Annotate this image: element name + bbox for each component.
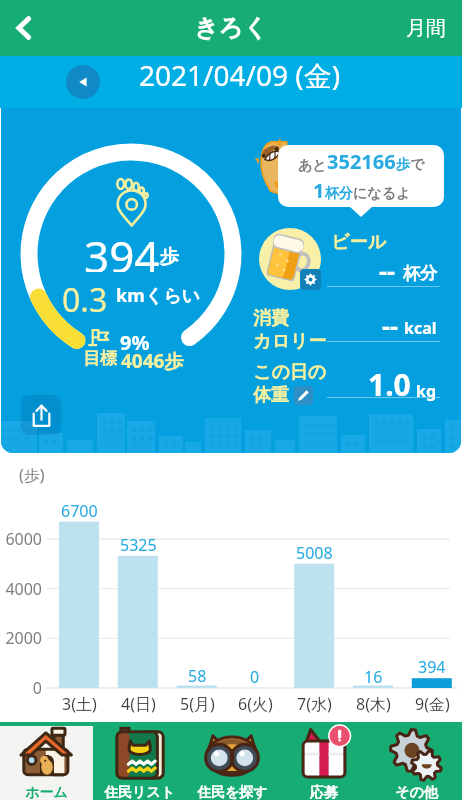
staticText: ホーム [25,784,68,800]
staticText: きろく [194,13,268,43]
staticText: になるよ [353,185,411,203]
staticText: ビール [331,231,386,254]
staticText: 0.3 [62,278,108,312]
staticText: 2000 [5,627,42,649]
staticText: 歩 [160,245,179,269]
staticText: 歩 [396,156,410,174]
staticText: 3(土) [62,693,97,715]
staticText: 月間 [406,16,446,41]
staticText: 4(日) [121,693,156,715]
staticText: 9(金) [415,693,450,715]
staticText: 消費 [253,307,289,330]
staticText: 応募 [310,784,338,800]
staticText: (歩) [19,464,45,486]
staticText: 体重 [253,384,289,407]
button[interactable]: 住民を探す [186,722,278,800]
staticText: 4000 [5,578,42,600]
staticText: 352166 [327,148,396,175]
staticText: 2021/04/09 (金) [139,56,341,94]
staticText: 0 [32,677,42,699]
staticText: カロリー [253,330,327,353]
staticText: 目標 [83,348,117,369]
button[interactable]: Back [0,0,48,56]
staticText: 1 [313,177,325,204]
button[interactable]: Edit weight [294,386,313,405]
staticText: 16 [364,666,383,688]
staticText: kg [416,380,437,402]
button[interactable]: 住民リスト [93,722,186,800]
button[interactable]: Previous day [66,65,100,99]
staticText: kmくらい [116,283,200,308]
staticText: 4046歩 [121,348,184,374]
staticText: 7(水) [297,693,332,715]
staticText: 1.0 [368,364,411,405]
button[interactable]: ホーム [0,722,93,800]
staticText: 住民リスト [104,784,175,800]
staticText: 6000 [5,528,42,550]
button[interactable]: 応募 [278,722,370,800]
staticText: 5325 [120,534,157,556]
staticText: 6(火) [238,693,273,715]
staticText: 5(月) [180,693,215,715]
staticText: 杯分 [403,263,437,284]
staticText: 8(木) [356,693,391,715]
staticText: あと [298,157,327,175]
staticText: 0 [250,666,260,688]
staticText: kcal [404,317,437,339]
staticText: 9% [120,329,150,356]
staticText: 58 [188,665,207,687]
staticText: 6700 [61,500,98,522]
button[interactable]: Settings [300,269,321,290]
staticText: 394 [84,226,160,272]
staticText: その他 [395,784,438,800]
staticText: 杯分 [325,185,353,203]
button[interactable]: 月間 [390,0,462,56]
staticText: この日の [253,361,327,384]
staticText: -- [382,308,399,342]
staticText: 住民を探す [197,784,268,800]
staticText: 394 [418,656,446,678]
button[interactable]: Share [21,395,61,435]
staticText: 5008 [296,542,333,564]
button[interactable]: その他 [370,722,462,800]
staticText: で [410,156,425,174]
staticText: -- [379,253,396,287]
